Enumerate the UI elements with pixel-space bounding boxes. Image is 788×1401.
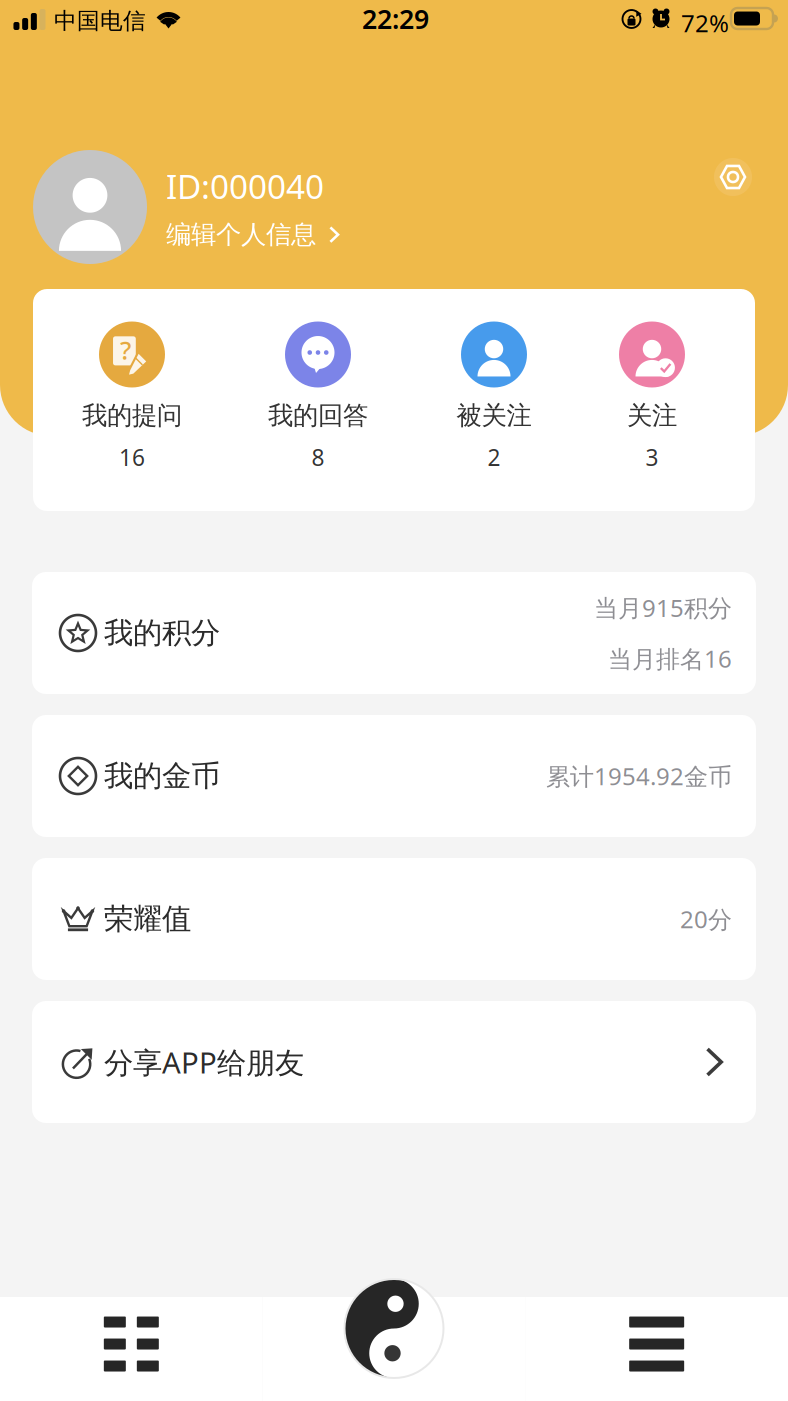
staticText: 2 (487, 442, 500, 472)
staticText: 8 (311, 442, 324, 472)
button[interactable]: 编辑个人信息 (166, 219, 344, 250)
button[interactable]: 关注 (583, 289, 721, 511)
staticText: 当月排名16 (608, 642, 732, 674)
staticText: 分享APP给朋友 (104, 1042, 304, 1081)
staticText: 72% (681, 7, 729, 39)
staticText: 累计1954.92金币 (546, 760, 732, 792)
button[interactable]: 分享APP给朋友 (32, 1001, 756, 1123)
staticText: ? (120, 333, 131, 367)
staticText: ID:000040 (166, 164, 324, 208)
button[interactable]: 我的金币 (32, 715, 756, 837)
button[interactable]: Settings (714, 158, 752, 196)
staticText: 当月915积分 (594, 592, 732, 623)
staticText: 我的回答 (268, 400, 368, 431)
button[interactable]: Divination (263, 1297, 525, 1401)
staticText: 3 (645, 442, 658, 472)
staticText: 20分 (680, 903, 732, 935)
staticText: 中国电信 (54, 7, 146, 35)
staticText: 荣耀值 (104, 901, 191, 937)
staticText: 我的金币 (104, 758, 220, 794)
staticText: 关注 (627, 400, 677, 431)
staticText: 22:29 (362, 1, 429, 36)
button[interactable]: 我的积分 (32, 572, 756, 694)
button[interactable]: Hexagrams (0, 1297, 263, 1401)
button[interactable]: More (525, 1297, 788, 1401)
button[interactable]: 我的回答 (231, 289, 405, 511)
button[interactable]: ? (33, 289, 231, 511)
staticText: 我的积分 (104, 615, 220, 651)
staticText: 编辑个人信息 (166, 219, 316, 250)
button[interactable]: 荣耀值 (32, 858, 756, 980)
button[interactable]: 被关注 (405, 289, 583, 511)
staticText: 被关注 (456, 400, 531, 431)
staticText: 16 (119, 442, 145, 472)
staticText: 我的提问 (82, 400, 182, 431)
